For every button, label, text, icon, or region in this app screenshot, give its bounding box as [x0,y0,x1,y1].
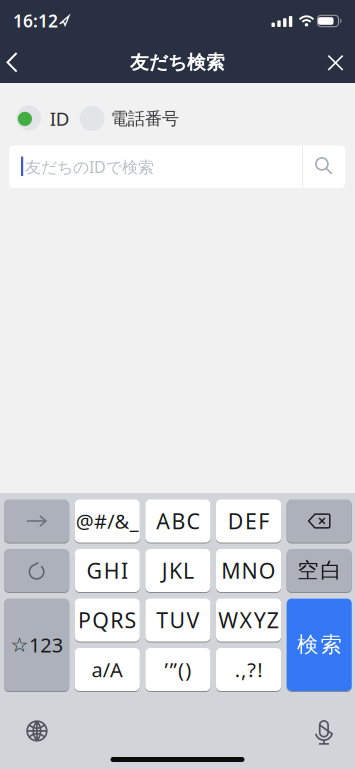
button[interactable]: 電話番号 [80,106,177,131]
staticText: E [245,507,257,535]
staticText: 3 [52,631,63,658]
staticText: Y [254,606,266,634]
button[interactable]: P [75,598,140,642]
staticText: G [87,556,103,585]
staticText: W [218,606,238,634]
staticText: ☆ [10,633,28,656]
staticText: A [110,656,123,683]
staticText: I [121,556,128,585]
staticText: _ [130,508,139,534]
staticText: D [228,507,244,535]
staticText: Z [267,606,279,634]
staticText: U [169,606,185,634]
button[interactable]: Dictation [314,720,333,744]
staticText: 2 [40,631,51,658]
staticText: . [235,656,240,683]
staticText: ! [257,656,262,683]
button[interactable]: Back [6,52,28,73]
staticText: Q [92,606,109,634]
staticText: 検 [297,632,318,658]
staticText: ’ [165,656,169,683]
button[interactable]: Close [327,55,343,71]
staticText: P [78,606,91,634]
staticText: S [124,606,136,634]
staticText: C [187,507,200,535]
staticText: T [156,606,168,634]
staticText: / [103,656,110,683]
staticText: 空 [297,557,318,584]
staticText: H [104,556,120,585]
button[interactable]: 空 [287,548,352,592]
staticText: ” [170,656,177,683]
button[interactable]: . [216,647,281,691]
staticText: # [94,508,107,534]
staticText: @ [76,508,94,534]
button[interactable]: Next keyboard [26,720,48,742]
staticText: R [110,606,123,634]
staticText: ) [185,656,191,683]
staticText: X [239,606,252,634]
button[interactable]: @ [75,499,140,543]
button[interactable]: ID [16,106,67,131]
button[interactable]: Undo [4,548,69,592]
staticText: & [115,508,130,534]
button[interactable]: Numbers [4,598,69,691]
staticText: A [156,507,170,535]
button[interactable]: W [216,598,281,642]
staticText: K [169,556,182,585]
staticText: B [171,507,185,535]
button[interactable]: J [145,548,210,592]
staticText: 電話番号 [111,108,179,129]
staticText: ID [50,106,70,131]
staticText: ( [178,656,184,683]
button[interactable]: T [145,598,210,642]
button[interactable]: Search [287,598,352,691]
staticText: 1 [29,631,40,658]
staticText: , [241,656,246,683]
button[interactable]: Search [315,157,332,174]
button[interactable]: Cursor right [4,499,69,543]
staticText: V [187,606,200,634]
button[interactable]: D [216,499,281,543]
staticText: F [258,507,269,535]
button[interactable]: a [75,647,140,691]
button[interactable]: ’ [145,647,210,691]
button[interactable]: G [75,548,140,592]
staticText: 16:12 [13,9,58,32]
staticText: O [259,556,276,585]
button[interactable]: Delete [287,499,352,543]
staticText: L [183,556,194,585]
staticText: 索 [320,632,341,658]
staticText: N [241,556,257,585]
staticText: J [162,556,168,585]
button[interactable]: A [145,499,210,543]
staticText: / [107,508,114,534]
staticText: 友だち検索 [130,51,225,74]
staticText: ? [247,656,256,683]
staticText: 白 [320,557,341,584]
staticText: a [91,656,102,683]
button[interactable]: M [216,548,281,592]
staticText: 友だちのIDで検索 [25,156,154,177]
staticText: M [221,556,240,585]
